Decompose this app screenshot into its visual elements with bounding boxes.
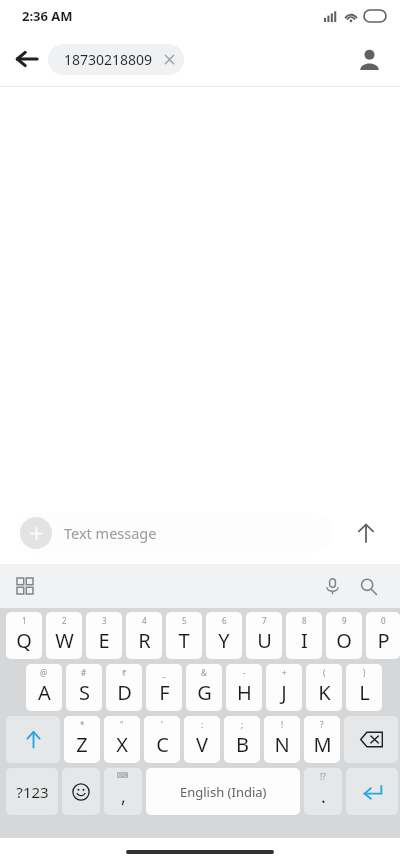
staticText: # [81,667,87,678]
button[interactable]: : [184,716,220,763]
staticText: I [301,627,308,654]
staticText: . [321,784,326,809]
staticText: 8 [302,615,307,626]
button[interactable]: _ [146,664,182,711]
button[interactable]: 9 [326,612,362,659]
staticText: C [156,731,169,758]
staticText: ₹ [122,667,127,678]
staticText: , [121,784,126,809]
button[interactable]: Add attachment [16,513,332,553]
staticText: : [201,719,204,730]
button[interactable]: ) [346,664,382,711]
button[interactable]: !? [304,768,342,815]
staticText: 18730218809 [64,50,153,69]
button[interactable]: Add attachment [20,517,52,549]
button[interactable]: 18730218809 [48,44,184,75]
button[interactable]: Shift [6,716,60,763]
staticText: G [197,679,212,706]
staticText: & [201,667,207,678]
button[interactable]: Send [346,513,386,553]
staticText: E [98,627,110,654]
staticText: T [178,627,190,654]
staticText: W [55,627,74,654]
staticText: !? [320,771,326,782]
staticText: 9 [342,615,347,626]
staticText: English (India) [180,783,267,801]
staticText: X [116,731,128,758]
staticText: R [138,627,151,654]
button[interactable]: 0 [366,612,400,659]
button[interactable]: - [226,664,262,711]
button[interactable]: Enter [346,768,398,815]
staticText: V [196,731,208,758]
button[interactable]: ₹ [106,664,142,711]
button[interactable]: Keyboard options [8,569,42,603]
button[interactable]: ?123 [6,768,58,815]
staticText: D [117,679,132,706]
button[interactable]: # [66,664,102,711]
button[interactable]: ? [304,716,340,763]
staticText: S [79,679,90,706]
button[interactable]: Back [6,38,48,80]
staticText: * [80,719,85,730]
button[interactable]: 2 [46,612,82,659]
staticText: 2 [62,615,67,626]
staticText: M [313,731,332,758]
button[interactable]: & [186,664,222,711]
staticText: 2:36 AM [22,7,73,25]
staticText: ⌨ [117,771,129,780]
staticText: ' [161,719,163,730]
button[interactable]: Emoji [62,768,100,815]
staticText: ) [363,667,366,678]
staticText: 7 [262,615,267,626]
button[interactable]: " [104,716,140,763]
staticText: P [377,627,390,654]
staticText: Q [16,627,32,654]
staticText: ?123 [16,782,49,802]
button[interactable]: ⌨ [104,768,142,815]
staticText: @ [40,667,48,678]
button[interactable]: + [266,664,302,711]
staticText: ( [323,667,326,678]
staticText: A [38,679,51,706]
staticText: U [257,627,272,654]
staticText: 5 [182,615,187,626]
staticText: O [336,627,352,654]
button[interactable]: ' [144,716,180,763]
button[interactable]: @ [26,664,62,711]
button[interactable]: ( [306,664,342,711]
button[interactable]: 3 [86,612,122,659]
staticText: 0 [381,615,386,626]
button[interactable]: * [64,716,100,763]
staticText: Y [218,627,230,654]
button[interactable]: 1 [6,612,42,659]
staticText: ; [241,719,244,730]
button[interactable]: 4 [126,612,162,659]
staticText: 4 [142,615,147,626]
button[interactable]: English (India) [146,768,300,815]
staticText: " [120,719,124,730]
staticText: B [236,731,249,758]
staticText: N [274,731,290,758]
staticText: H [237,679,252,706]
button[interactable]: 8 [286,612,322,659]
button[interactable]: ; [224,716,260,763]
staticText: _ [162,667,166,678]
staticText: ! [281,719,284,730]
staticText: ? [320,719,324,730]
button[interactable]: Backspace [344,716,398,763]
staticText: K [318,679,331,706]
button[interactable]: Contact details [348,38,390,80]
staticText: Z [76,731,88,758]
staticText: + [282,667,287,678]
button[interactable]: Search [350,568,386,604]
button[interactable]: ! [264,716,300,763]
staticText: Text message [64,523,157,543]
button[interactable]: Voice input [314,568,350,604]
staticText: F [159,679,170,706]
button[interactable]: 7 [246,612,282,659]
staticText: J [281,679,287,706]
staticText: 1 [22,615,27,626]
button[interactable]: 5 [166,612,202,659]
button[interactable]: 6 [206,612,242,659]
